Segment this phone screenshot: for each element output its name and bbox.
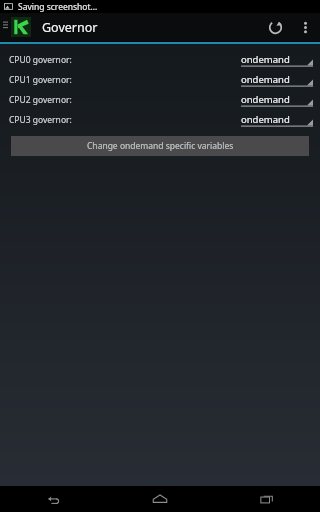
button[interactable]: CPU0 governor:: [0, 50, 320, 70]
staticText: CPU0 governor:: [9, 54, 72, 66]
staticText: Saving screenshot…: [18, 1, 98, 13]
staticText: ondemand: [241, 73, 290, 86]
staticText: Governor: [42, 19, 98, 36]
button[interactable]: More options: [292, 13, 318, 41]
staticText: CPU1 governor:: [9, 74, 72, 86]
button[interactable]: Change ondemand specific variables: [11, 136, 309, 156]
staticText: ondemand: [241, 113, 290, 126]
button[interactable]: CPU1 governor:: [0, 70, 320, 90]
button[interactable]: Back: [0, 486, 106, 512]
button[interactable]: CPU3 governor:: [0, 110, 320, 130]
staticText: Change ondemand specific variables: [87, 140, 234, 152]
button[interactable]: CPU2 governor:: [0, 90, 320, 110]
button[interactable]: App icon, navigate up: [0, 17, 34, 37]
button[interactable]: Refresh: [258, 13, 292, 41]
button[interactable]: Recent apps: [213, 486, 320, 512]
staticText: ondemand: [241, 93, 290, 106]
button[interactable]: Home: [106, 486, 213, 512]
staticText: CPU2 governor:: [9, 94, 72, 106]
staticText: ondemand: [241, 53, 290, 66]
staticText: CPU3 governor:: [9, 114, 72, 126]
